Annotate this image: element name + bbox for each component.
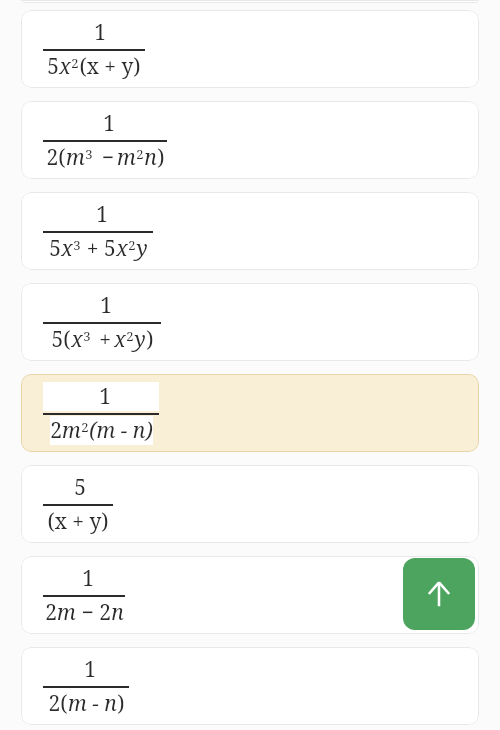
staticText: m − n (68, 689, 117, 718)
staticText: 5 (49, 234, 61, 263)
staticText: m (66, 143, 85, 172)
staticText: x (116, 234, 128, 263)
staticText: 5( (51, 325, 71, 354)
button[interactable]: 1 (21, 283, 479, 361)
staticText: 1 (103, 109, 115, 138)
staticText: 2 (126, 327, 134, 345)
staticText: ) (157, 143, 165, 172)
staticText: 5 (74, 473, 86, 502)
staticText: m (117, 143, 136, 172)
staticText: 1 (84, 655, 96, 684)
staticText: (x + y) (47, 507, 109, 536)
staticText: n (144, 143, 157, 172)
staticText: n (111, 598, 124, 627)
staticText: 2 (45, 598, 57, 627)
button[interactable]: Scroll to top (403, 558, 475, 630)
staticText: x (61, 234, 73, 263)
staticText: + (91, 325, 114, 354)
staticText: 2( (46, 143, 66, 172)
staticText: 1 (82, 564, 94, 593)
staticText: (x + y) (79, 52, 141, 81)
staticText: 3 (83, 327, 91, 345)
button[interactable]: 1 (21, 374, 479, 452)
staticText: 2 (81, 418, 89, 436)
staticText: ) (146, 325, 154, 354)
staticText: x (71, 325, 83, 354)
button[interactable]: 1 (21, 101, 479, 179)
staticText: 3 (85, 145, 93, 163)
staticText: 2 (71, 54, 79, 72)
button[interactable]: 1 (21, 647, 479, 725)
staticText: y (136, 234, 148, 263)
staticText: 5 (47, 52, 59, 81)
staticText: ) (117, 689, 125, 718)
staticText: 1 (96, 200, 108, 229)
staticText: x (114, 325, 126, 354)
staticText: + 5 (81, 234, 116, 263)
staticText: − 2 (76, 598, 111, 627)
button[interactable]: 1 (21, 10, 479, 88)
staticText: x (59, 52, 71, 81)
staticText: y (134, 325, 146, 354)
staticText: m (62, 416, 81, 445)
staticText: 3 (73, 236, 81, 254)
button[interactable]: 1 (21, 192, 479, 270)
staticText: 1 (99, 382, 111, 411)
staticText: 2 (50, 416, 62, 445)
staticText: m (57, 598, 76, 627)
staticText: − (93, 143, 117, 172)
staticText: 2 (128, 236, 136, 254)
staticText: 1 (100, 291, 112, 320)
staticText: 2 (136, 145, 144, 163)
button[interactable]: 1 (21, 556, 479, 634)
staticText: 1 (94, 18, 106, 47)
button[interactable]: 5 (21, 465, 479, 543)
staticText: (m − n) (89, 416, 153, 445)
staticText: 2( (48, 689, 68, 718)
